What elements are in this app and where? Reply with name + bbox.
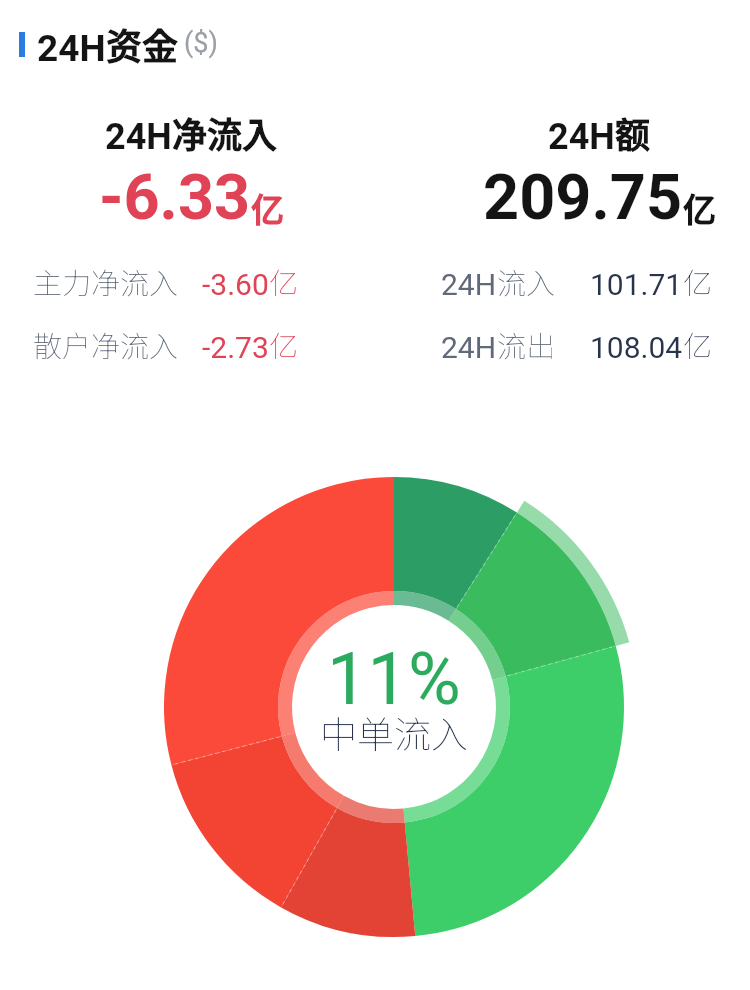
staticText: 额 (615, 107, 651, 158)
staticText: 101.71 (590, 267, 683, 302)
button[interactable]: 24H 资金 ($) (19, 18, 216, 70)
button[interactable]: 24H (441, 260, 713, 302)
staticText: 亿 (269, 323, 299, 365)
staticText: 24H (441, 267, 497, 302)
staticText: 24H (548, 116, 615, 158)
button[interactable]: 24H (416, 107, 750, 235)
staticText: 亿 (683, 323, 713, 365)
other: 24H 资金流向占比环形图 (0, 0, 750, 990)
staticText: 108.04 (590, 330, 683, 365)
staticText: 亿 (269, 260, 299, 302)
button[interactable]: 主力净流入 (33, 260, 299, 302)
staticText: 中单流入 (320, 705, 468, 759)
staticText: -6.33 (99, 161, 251, 235)
button[interactable]: 散户净流入 (33, 323, 299, 365)
staticText: 11% (327, 637, 461, 721)
button[interactable]: 11% (234, 637, 554, 721)
staticText: 24H (37, 27, 106, 70)
staticText: ($) (184, 27, 218, 59)
staticText: 亿 (251, 184, 284, 232)
staticText: 亿 (683, 260, 713, 302)
button[interactable]: 24H (441, 323, 713, 365)
staticText: 主力净流入 (33, 260, 179, 302)
staticText: -2.73 (202, 330, 269, 365)
staticText: 亿 (683, 184, 716, 232)
staticText: 流出 (497, 323, 556, 365)
staticText: 散户净流入 (33, 323, 179, 365)
staticText: 24H (105, 116, 172, 158)
staticText: 资金 (106, 18, 179, 70)
staticText: 24H (441, 330, 497, 365)
button[interactable]: 24H (0, 107, 383, 235)
staticText: -3.60 (202, 267, 269, 302)
staticText: 流入 (497, 260, 556, 302)
staticText: 209.75 (483, 161, 683, 235)
staticText: 净流入 (172, 107, 278, 158)
